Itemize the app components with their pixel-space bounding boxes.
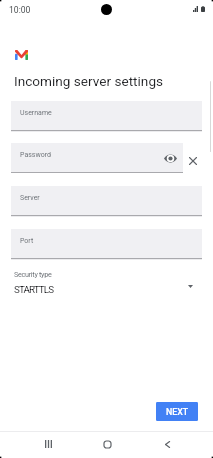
staticText: Incoming server settings <box>14 73 164 89</box>
staticText: Password <box>20 151 51 159</box>
staticText: Security type <box>14 270 52 278</box>
button[interactable]: Security type <box>0 265 213 299</box>
staticText: 10:00 <box>9 5 31 15</box>
button[interactable]: Back <box>157 434 177 454</box>
staticText: NEXT <box>166 407 189 417</box>
button[interactable]: Clear password <box>186 153 200 169</box>
button[interactable]: Home <box>97 434 117 454</box>
button[interactable]: Port <box>11 229 202 260</box>
button[interactable]: Recent apps <box>38 434 58 454</box>
button[interactable]: Username <box>11 101 202 132</box>
staticText: Server <box>20 194 40 202</box>
staticText: Username <box>20 109 52 117</box>
staticText: Port <box>20 237 34 245</box>
button[interactable]: Show password <box>162 148 178 168</box>
staticText: STARTTLS <box>14 284 54 295</box>
button[interactable]: NEXT <box>156 402 198 421</box>
button[interactable]: Password <box>11 143 183 174</box>
button[interactable]: Server <box>11 186 202 217</box>
